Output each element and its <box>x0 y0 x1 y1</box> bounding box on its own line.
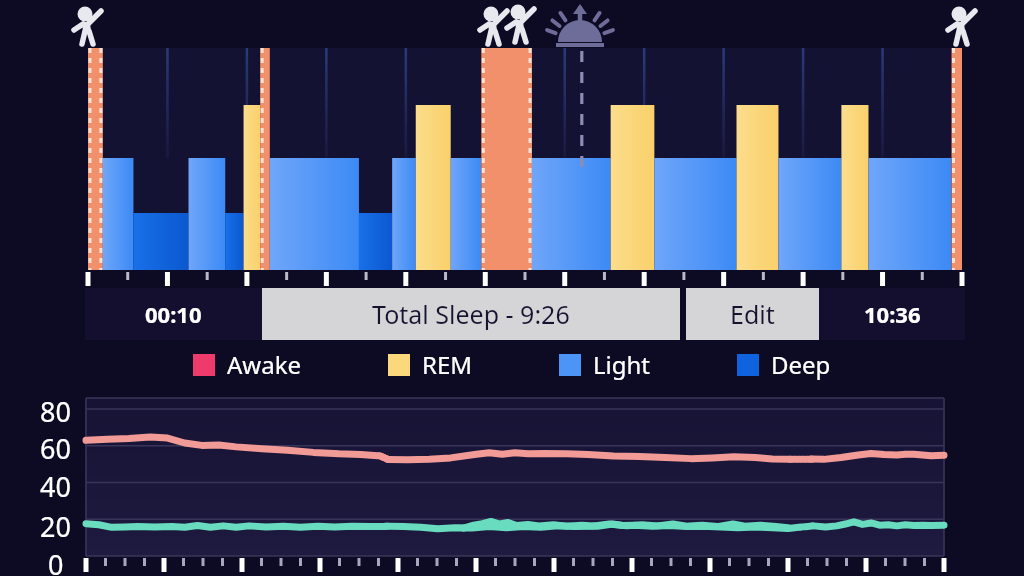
staticText: Deep <box>771 348 831 381</box>
button[interactable]: Deep <box>737 348 831 381</box>
staticText: Light <box>593 348 651 381</box>
button[interactable]: Light <box>559 348 651 381</box>
button[interactable]: 10:36 <box>819 288 965 340</box>
button[interactable]: Edit <box>686 288 819 340</box>
staticText: REM <box>422 348 473 381</box>
staticText: Awake <box>227 348 302 381</box>
staticText: 40 <box>40 468 71 505</box>
button[interactable]: Total Sleep - 9:26 <box>262 288 680 340</box>
staticText: 00:10 <box>145 299 202 329</box>
button[interactable]: Awake <box>193 348 302 381</box>
staticText: 0 <box>48 546 64 576</box>
staticText: 60 <box>40 430 71 467</box>
staticText: Edit <box>730 297 775 331</box>
button[interactable]: 00:10 <box>85 288 262 340</box>
button[interactable]: REM <box>388 348 473 381</box>
staticText: Total Sleep - 9:26 <box>372 297 570 331</box>
staticText: 80 <box>40 393 71 430</box>
staticText: 10:36 <box>864 299 921 329</box>
staticText: 20 <box>40 508 71 545</box>
